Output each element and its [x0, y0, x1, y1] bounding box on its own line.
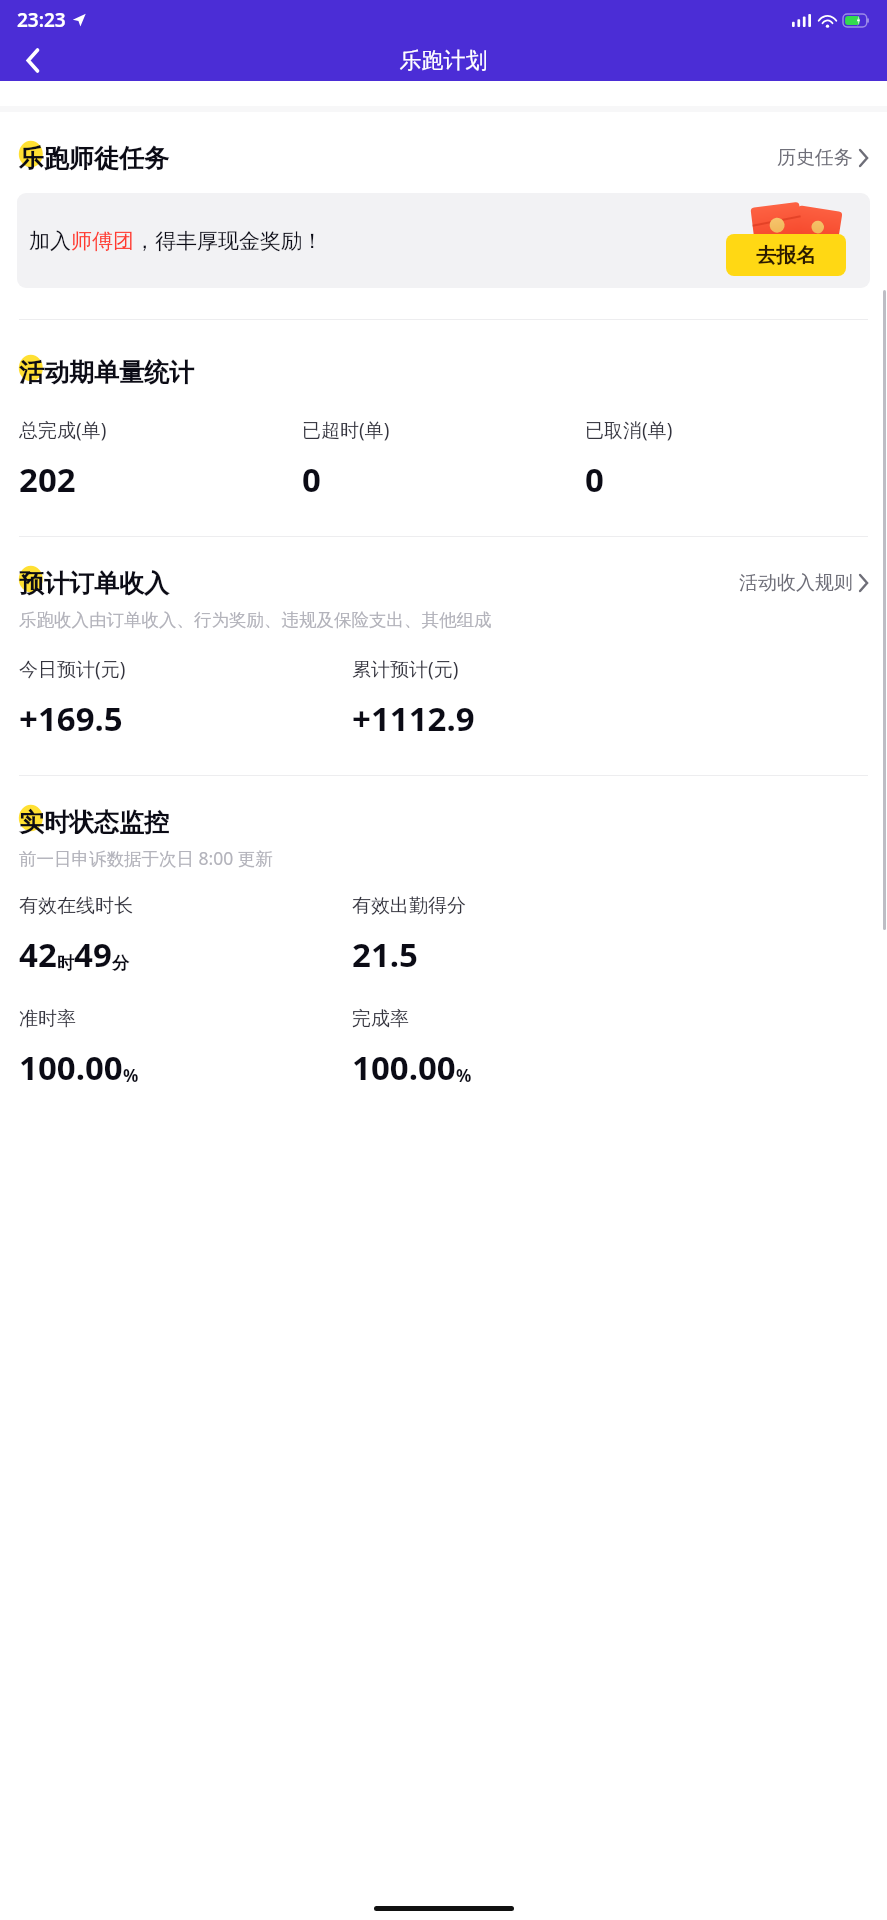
staticText: 实时状态监控: [19, 807, 169, 838]
staticText: %: [456, 1064, 472, 1087]
staticText: 已超时(单): [302, 417, 390, 443]
staticText: +169.5: [19, 696, 123, 741]
staticText: 去报名: [756, 243, 816, 268]
staticText: 23:23: [17, 7, 66, 33]
staticText: 0: [585, 457, 604, 502]
staticText: 前一日申诉数据于次日 8:00 更新: [19, 846, 273, 870]
staticText: +1112.9: [352, 696, 475, 741]
staticText: 0: [302, 457, 321, 502]
staticText: 202: [19, 457, 76, 502]
staticText: 活动收入规则: [739, 571, 853, 595]
staticText: 时: [57, 953, 74, 974]
staticText: 49: [74, 932, 112, 977]
button[interactable]: Back: [0, 40, 66, 81]
staticText: ，得丰厚现金奖励！: [134, 228, 323, 254]
staticText: 乐跑师徒任务: [19, 143, 169, 174]
staticText: 累计预计(元): [352, 656, 459, 682]
staticText: 分: [112, 953, 129, 974]
staticText: 乐跑计划: [66, 47, 821, 75]
staticText: 乐跑收入由订单收入、行为奖励、违规及保险支出、其他组成: [19, 609, 492, 631]
staticText: 历史任务: [777, 146, 853, 170]
staticText: 100.00: [19, 1045, 123, 1090]
staticText: 有效出勤得分: [352, 894, 466, 918]
staticText: 准时率: [19, 1007, 76, 1031]
staticText: 100.00: [352, 1045, 456, 1090]
staticText: 总完成(单): [19, 417, 107, 443]
staticText: 已取消(单): [585, 417, 673, 443]
staticText: 预计订单收入: [19, 568, 169, 599]
staticText: 完成率: [352, 1007, 409, 1031]
staticText: 师傅团: [71, 228, 134, 254]
button[interactable]: 活动收入规则: [739, 567, 868, 599]
button[interactable]: 去报名: [726, 234, 846, 276]
staticText: 今日预计(元): [19, 656, 126, 682]
staticText: 加入: [29, 228, 71, 254]
staticText: 活动期单量统计: [19, 357, 194, 388]
staticText: 有效在线时长: [19, 894, 133, 918]
button[interactable]: 历史任务: [777, 142, 868, 174]
staticText: 42: [19, 932, 57, 977]
staticText: 21.5: [352, 932, 418, 977]
button[interactable]: 加入: [17, 193, 870, 288]
staticText: %: [123, 1064, 139, 1087]
